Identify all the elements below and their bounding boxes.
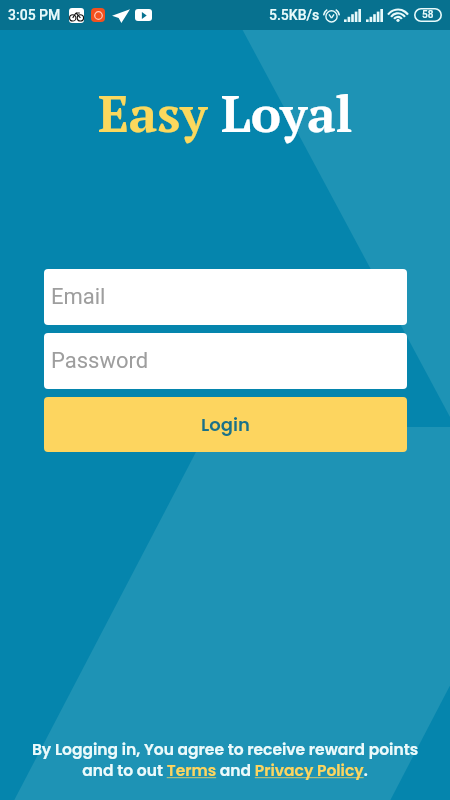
staticText: Password	[51, 348, 149, 374]
button[interactable]: Email	[44, 269, 407, 325]
staticText: Easy Loyal	[98, 79, 353, 147]
staticText: 58	[422, 9, 434, 21]
staticText: 5.5KB/s	[269, 7, 320, 23]
button[interactable]: Login	[44, 397, 407, 452]
staticText: By Logging in, You agree to receive rewa…	[30, 739, 420, 782]
staticText: 3:05 PM	[8, 7, 61, 23]
staticText: Email	[51, 284, 106, 310]
staticText: Login	[201, 412, 250, 437]
button[interactable]: Password	[44, 333, 407, 389]
